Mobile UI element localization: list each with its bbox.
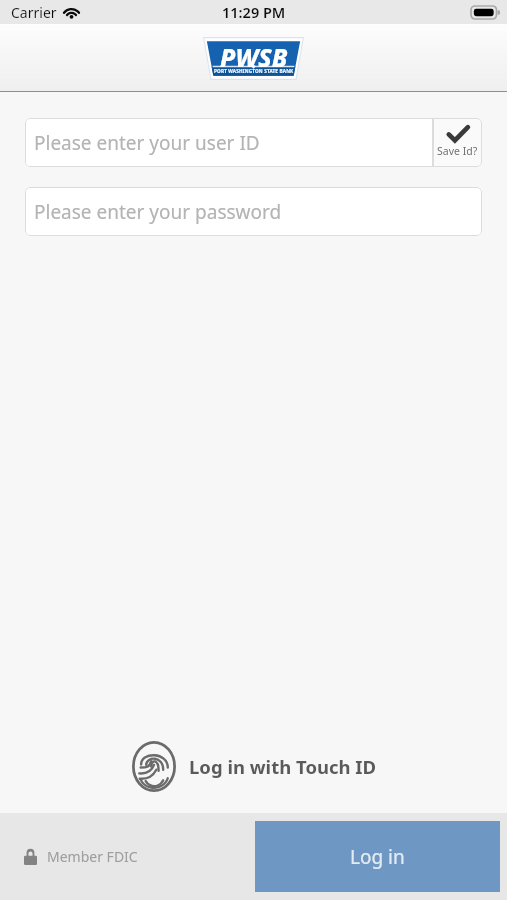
staticText: Log in <box>350 844 405 870</box>
staticText: 11:29 PM <box>222 2 286 22</box>
button[interactable]: Please enter your password <box>25 187 482 236</box>
staticText: Save Id? <box>437 144 478 158</box>
button[interactable]: Please enter your user ID <box>25 118 433 167</box>
button[interactable]: Log in with Touch ID <box>0 740 507 793</box>
staticText: Please enter your user ID <box>34 130 260 156</box>
staticText: PWSB <box>220 40 288 74</box>
button[interactable]: Save Id <box>433 118 482 167</box>
staticText: Member FDIC <box>47 847 138 866</box>
staticText: PORT WASHINGTON STATE BANK <box>214 68 294 74</box>
staticText: Please enter your password <box>34 199 282 225</box>
button[interactable]: Log in <box>255 821 500 892</box>
staticText: Carrier <box>11 3 57 22</box>
staticText: Log in with Touch ID <box>189 754 377 779</box>
